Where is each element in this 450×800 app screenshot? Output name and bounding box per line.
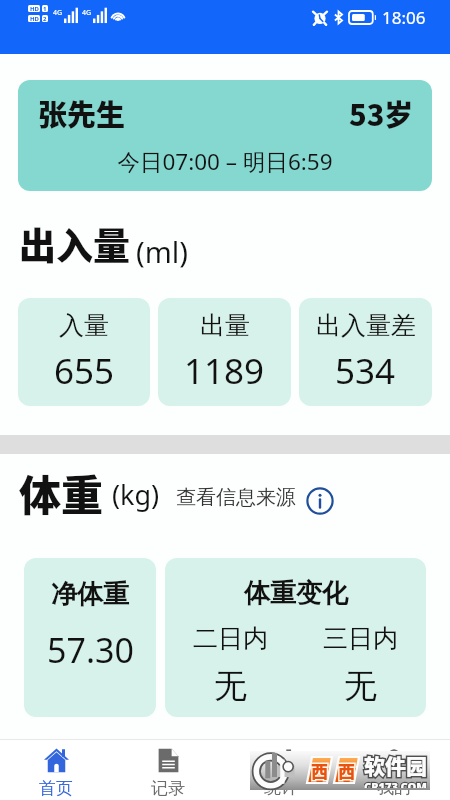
button[interactable]: 体重变化 bbox=[165, 558, 426, 717]
staticText: 首页 bbox=[39, 778, 73, 799]
other: 查看信息来源 bbox=[306, 487, 334, 515]
button[interactable]: 我的 bbox=[337, 740, 450, 800]
staticText: 57.30 bbox=[47, 627, 134, 673]
button[interactable]: 查看信息来源 bbox=[176, 474, 334, 502]
button[interactable]: 统计 bbox=[224, 740, 337, 800]
button[interactable]: 净体重 bbox=[24, 558, 156, 717]
staticText: 1189 bbox=[184, 347, 265, 395]
staticText: 体重变化 bbox=[244, 577, 348, 610]
staticText: 18:06 bbox=[382, 6, 426, 29]
button[interactable]: 出入量差 bbox=[299, 298, 432, 406]
staticText: 534 bbox=[335, 347, 396, 395]
staticText: 查看信息来源 bbox=[176, 485, 296, 510]
staticText: 张先生 bbox=[38, 92, 126, 134]
staticText: CR173.COM bbox=[364, 779, 427, 788]
staticText: 出入量差 bbox=[316, 310, 416, 341]
button[interactable]: 入量 bbox=[18, 298, 150, 406]
button[interactable]: 首页 bbox=[0, 740, 112, 800]
staticText: 无 bbox=[344, 665, 377, 707]
button[interactable]: 出量 bbox=[158, 298, 291, 406]
staticText: 西 bbox=[311, 758, 328, 783]
staticText: 655 bbox=[54, 347, 115, 395]
staticText: 二日内 bbox=[193, 623, 268, 654]
staticText: (kg) bbox=[112, 476, 160, 513]
staticText: 出量 bbox=[200, 310, 250, 341]
staticText: (ml) bbox=[136, 232, 188, 271]
staticText: 4G bbox=[82, 8, 92, 18]
button[interactable]: 记录 bbox=[112, 740, 224, 800]
staticText: 出入量 bbox=[19, 217, 130, 271]
staticText: 我的 bbox=[377, 777, 411, 798]
staticText: 西 bbox=[338, 758, 355, 783]
staticText: 西 bbox=[338, 758, 355, 783]
staticText: 软件园 bbox=[364, 750, 427, 780]
staticText: 53岁 bbox=[349, 92, 414, 134]
staticText: 西 bbox=[311, 758, 328, 783]
staticText: 入量 bbox=[59, 310, 109, 341]
staticText: 无 bbox=[214, 665, 247, 707]
staticText: 体重 bbox=[19, 462, 104, 518]
staticText: HD bbox=[30, 5, 39, 12]
staticText: HD bbox=[30, 15, 39, 22]
staticText: 4G bbox=[53, 8, 63, 18]
staticText: 1 bbox=[43, 5, 47, 12]
button[interactable]: 张先生 bbox=[18, 80, 432, 191]
staticText: 三日内 bbox=[323, 623, 398, 654]
staticText: CR173.COM bbox=[364, 779, 427, 788]
staticText: 记录 bbox=[151, 778, 185, 799]
staticText: 2 bbox=[43, 15, 47, 22]
staticText: 统计 bbox=[264, 777, 298, 798]
staticText: 软件园 bbox=[364, 750, 427, 780]
staticText: 今日07:00 – 明日6:59 bbox=[18, 146, 432, 177]
staticText: 净体重 bbox=[51, 578, 129, 611]
